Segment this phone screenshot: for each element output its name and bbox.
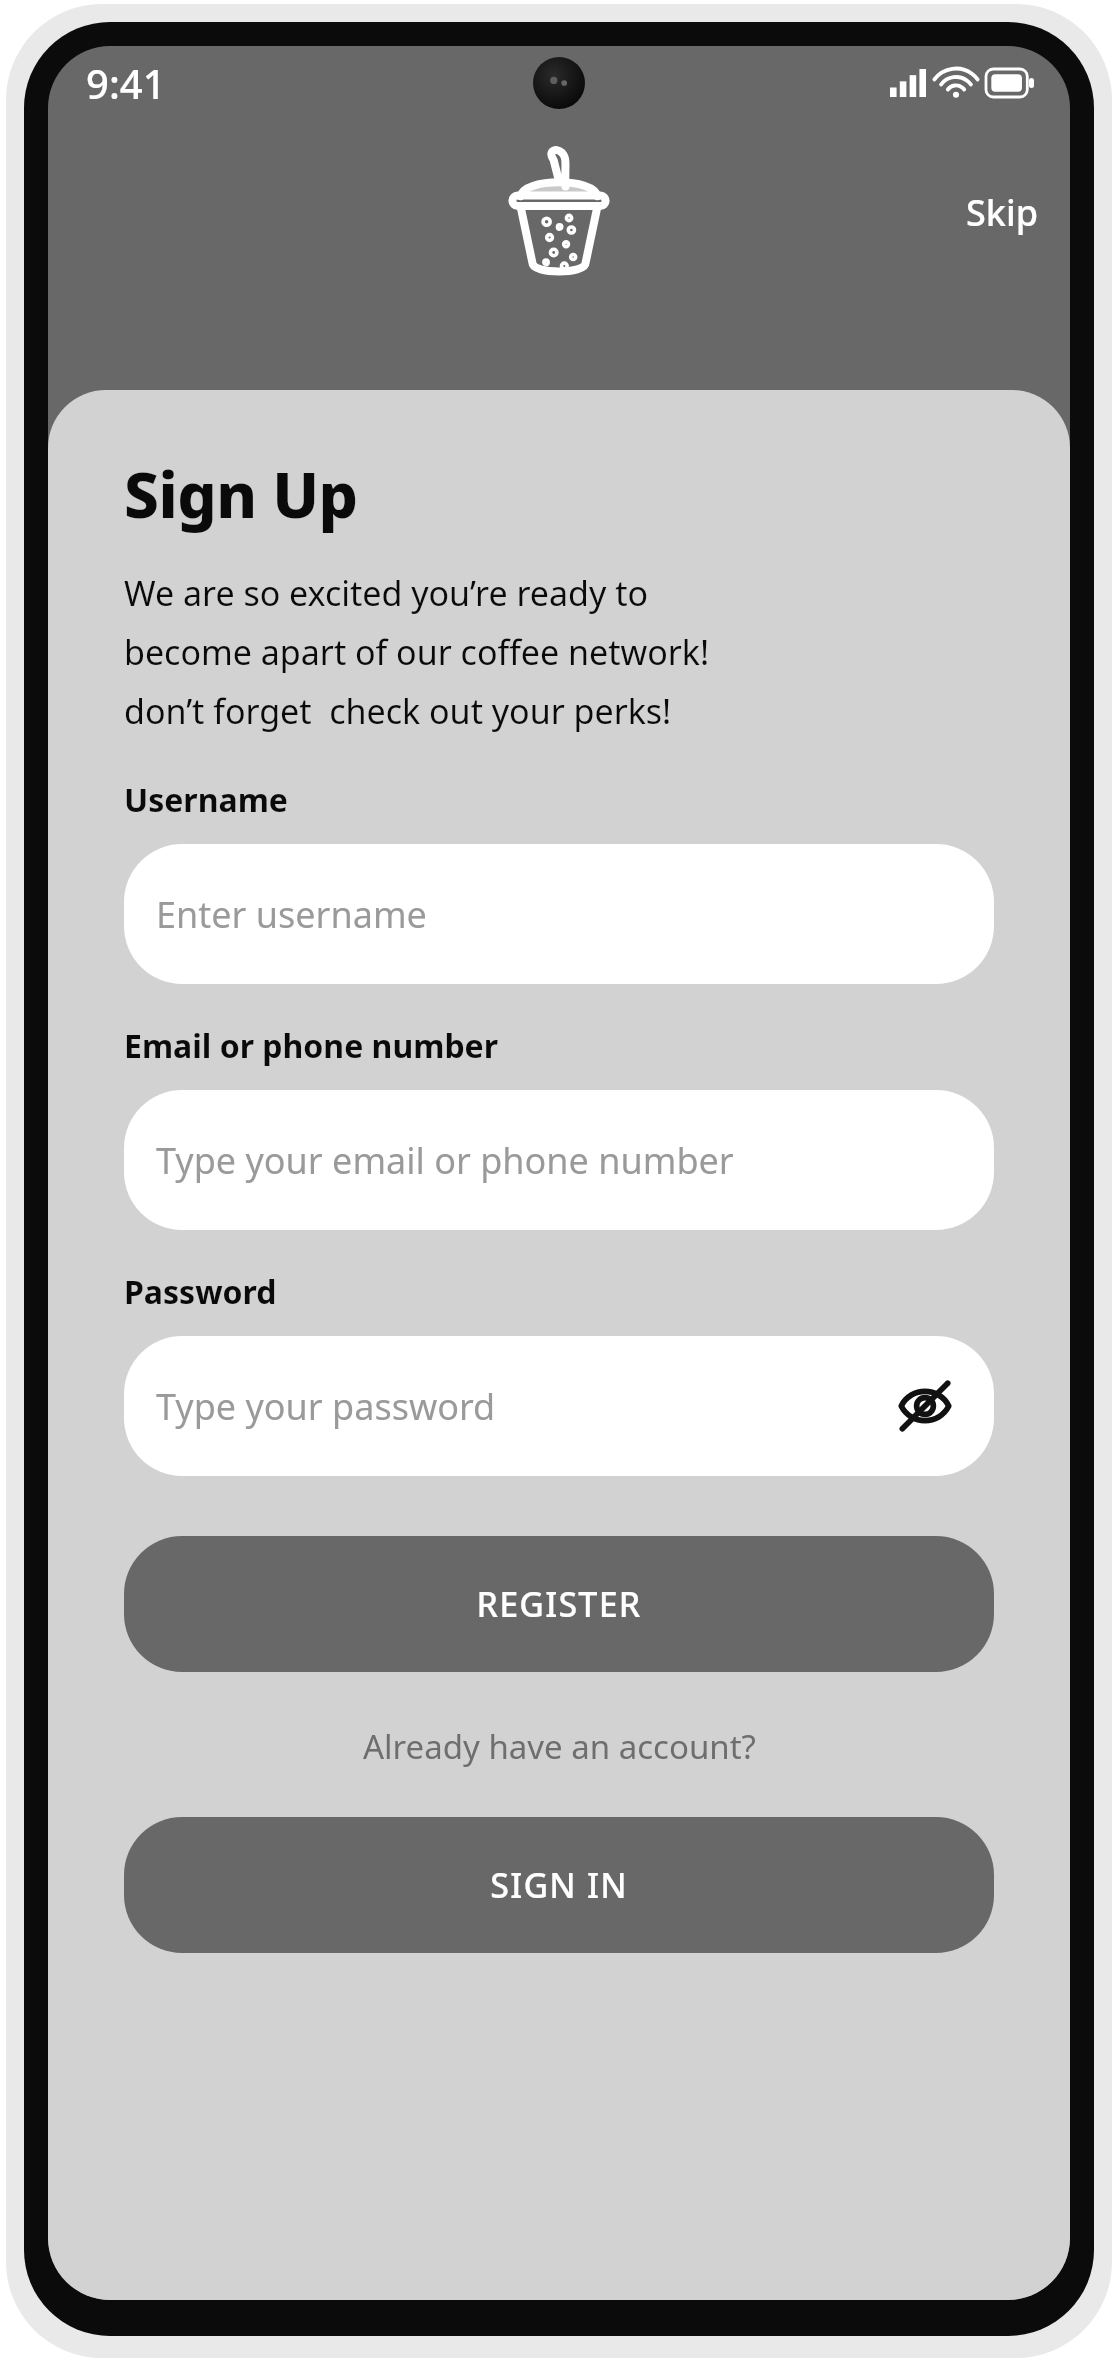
staticText: Type your email or phone number	[156, 1136, 734, 1185]
button[interactable]: Type your email or phone number	[124, 1090, 994, 1230]
staticText: Password	[124, 1270, 277, 1314]
staticText: Sign Up	[124, 452, 358, 536]
button[interactable]: Show password	[888, 1369, 962, 1443]
staticText: Enter username	[156, 890, 427, 939]
staticText: We are so excited you’re ready to become…	[124, 570, 710, 734]
staticText: 9:41	[86, 56, 166, 110]
staticText: REGISTER	[476, 1581, 642, 1627]
staticText: Skip	[966, 188, 1038, 237]
staticText: Email or phone number	[124, 1024, 499, 1068]
button[interactable]: Type your password	[124, 1336, 994, 1476]
button[interactable]: Skip	[956, 182, 1048, 243]
staticText: Already have an account?	[363, 1724, 756, 1769]
staticText: SIGN IN	[490, 1862, 628, 1908]
button[interactable]: Enter username	[124, 844, 994, 984]
button[interactable]: Already have an account?	[355, 1720, 764, 1773]
button[interactable]: SIGN IN	[124, 1817, 994, 1953]
staticText: Username	[124, 778, 288, 822]
button[interactable]: REGISTER	[124, 1536, 994, 1672]
staticText: Type your password	[156, 1382, 496, 1431]
other: Coffee logo	[500, 134, 618, 284]
